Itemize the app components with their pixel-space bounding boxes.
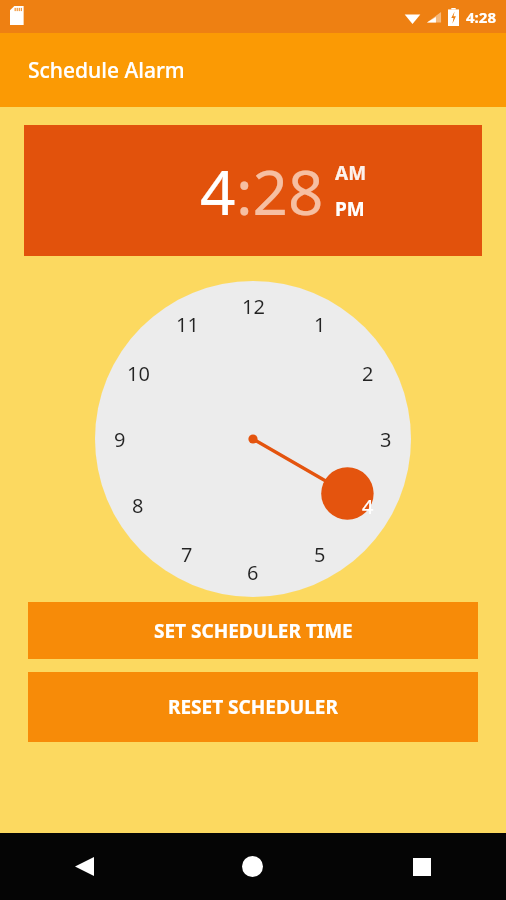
staticText: 5 xyxy=(314,541,326,568)
staticText: Schedule Alarm xyxy=(28,56,185,85)
button[interactable]: SET SCHEDULER TIME xyxy=(28,602,478,659)
button[interactable]: RESET SCHEDULER xyxy=(28,672,478,742)
staticText: 3 xyxy=(380,426,392,453)
staticText: 1 xyxy=(314,311,326,338)
staticText: 11 xyxy=(176,311,199,338)
staticText: 2 xyxy=(362,360,374,387)
staticText: 12 xyxy=(242,293,265,320)
staticText: 10 xyxy=(127,360,150,387)
staticText: PM xyxy=(335,196,365,222)
staticText: 4 xyxy=(200,149,236,233)
staticText: AM xyxy=(335,160,367,186)
button[interactable]: 4 xyxy=(24,125,482,256)
staticText: :28 xyxy=(236,149,324,233)
staticText: 4:28 xyxy=(466,7,496,27)
button[interactable]: Home xyxy=(168,833,337,900)
staticText: 4 xyxy=(362,493,374,520)
button[interactable]: Recent apps xyxy=(337,833,506,900)
staticText: SET SCHEDULER TIME xyxy=(154,618,353,644)
staticText: RESET SCHEDULER xyxy=(168,694,338,720)
button[interactable]: Back xyxy=(0,833,168,900)
staticText: 7 xyxy=(181,541,193,568)
staticText: 8 xyxy=(132,492,144,519)
staticText: 6 xyxy=(247,559,259,586)
button[interactable] xyxy=(95,281,411,597)
staticText: 9 xyxy=(114,426,126,453)
